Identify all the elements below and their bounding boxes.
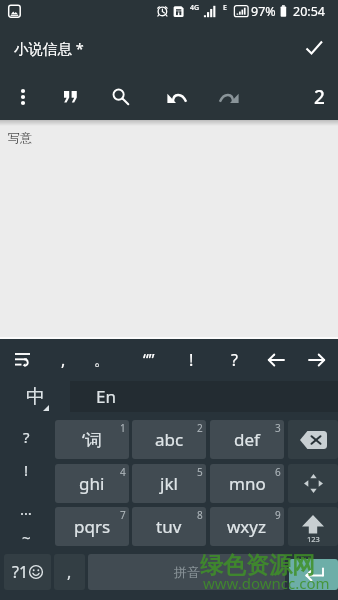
staticText: … bbox=[20, 499, 32, 519]
staticText: abc bbox=[155, 428, 184, 451]
staticText: def bbox=[234, 428, 260, 451]
staticText: ?1 bbox=[12, 561, 29, 583]
staticText: 2 bbox=[314, 84, 325, 110]
staticText: ? bbox=[231, 349, 238, 371]
staticText: ! bbox=[189, 349, 194, 371]
staticText: , bbox=[61, 349, 66, 371]
staticText: 6 bbox=[275, 465, 281, 479]
staticText: ghi bbox=[79, 472, 105, 495]
button[interactable] bbox=[288, 464, 338, 503]
button[interactable]: abc bbox=[132, 420, 206, 459]
button[interactable]: Search bbox=[105, 74, 137, 120]
button[interactable]: ghi bbox=[55, 464, 129, 503]
button[interactable]: 中 bbox=[0, 381, 70, 412]
staticText: ? bbox=[23, 427, 30, 447]
staticText: 4G bbox=[190, 3, 200, 13]
staticText: pqrs bbox=[74, 515, 111, 538]
button[interactable]: ? bbox=[8, 421, 44, 453]
button[interactable]: Save bbox=[290, 22, 338, 74]
staticText: 中 bbox=[26, 385, 45, 409]
staticText: 绿色资源网 bbox=[200, 551, 315, 580]
button[interactable]: jkl bbox=[132, 464, 206, 503]
button[interactable]: 拼音 bbox=[88, 554, 285, 590]
button[interactable] bbox=[288, 420, 338, 459]
staticText: 123 bbox=[307, 534, 320, 544]
staticText: 20:54 bbox=[293, 3, 325, 20]
button[interactable]: pqrs bbox=[55, 507, 129, 546]
button[interactable]: 2 bbox=[300, 74, 338, 120]
button[interactable]: Enter bbox=[289, 559, 338, 590]
staticText: ~ bbox=[22, 527, 31, 547]
button[interactable]: 123 bbox=[288, 507, 338, 546]
button[interactable]: 。 bbox=[86, 339, 117, 381]
staticText: ‘词 bbox=[82, 428, 102, 451]
button[interactable]: ! bbox=[176, 339, 207, 381]
staticText: ! bbox=[24, 460, 29, 480]
button[interactable]: Redo bbox=[213, 74, 245, 120]
button[interactable]: ?1 bbox=[4, 554, 51, 590]
staticText: 。 bbox=[94, 351, 109, 370]
staticText: 9 bbox=[275, 508, 281, 522]
staticText: wxyz bbox=[227, 515, 267, 538]
button[interactable]: ! bbox=[8, 454, 44, 486]
button[interactable]: Line break bbox=[0, 339, 44, 381]
button[interactable]: En bbox=[70, 381, 338, 412]
staticText: 1 bbox=[120, 421, 126, 435]
button[interactable]: Quote bbox=[55, 74, 87, 120]
staticText: tuv bbox=[156, 515, 182, 538]
staticText: En bbox=[96, 385, 116, 408]
button[interactable]: Undo bbox=[161, 74, 193, 120]
staticText: 小说信息 * bbox=[14, 38, 84, 58]
button[interactable]: wxyz bbox=[210, 507, 284, 546]
staticText: 4 bbox=[120, 465, 126, 479]
staticText: 5 bbox=[197, 465, 203, 479]
button[interactable]: Move right bbox=[300, 339, 334, 381]
staticText: 写意 bbox=[8, 130, 32, 145]
staticText: 7 bbox=[120, 508, 126, 522]
staticText: 2 bbox=[197, 421, 203, 435]
button[interactable]: ‘词 bbox=[55, 420, 129, 459]
button[interactable]: … bbox=[8, 493, 44, 525]
button[interactable]: , bbox=[48, 339, 79, 381]
staticText: mno bbox=[229, 472, 266, 495]
button[interactable]: def bbox=[210, 420, 284, 459]
button[interactable]: tuv bbox=[132, 507, 206, 546]
staticText: 拼音 bbox=[174, 564, 200, 580]
staticText: www.downcc.com bbox=[203, 573, 330, 593]
staticText: jkl bbox=[160, 472, 178, 495]
staticText: 3 bbox=[275, 421, 281, 435]
button[interactable]: Move left bbox=[259, 339, 293, 381]
button[interactable]: “” bbox=[133, 339, 164, 381]
staticText: “” bbox=[143, 349, 155, 371]
staticText: , bbox=[67, 561, 72, 583]
button[interactable]: More options bbox=[7, 74, 39, 120]
button[interactable]: ~ bbox=[8, 521, 44, 553]
staticText: E bbox=[223, 3, 227, 13]
button[interactable]: mno bbox=[210, 464, 284, 503]
button[interactable]: , bbox=[54, 554, 85, 590]
button[interactable]: ? bbox=[219, 339, 250, 381]
staticText: 97% bbox=[251, 3, 276, 20]
staticText: 8 bbox=[197, 508, 203, 522]
